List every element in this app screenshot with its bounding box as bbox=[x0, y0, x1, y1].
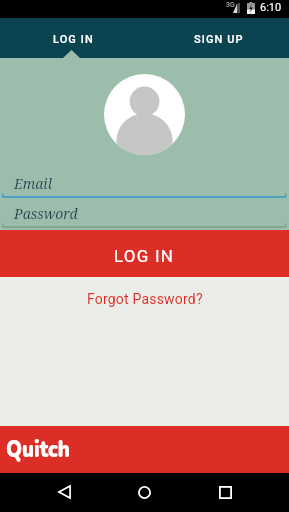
button[interactable]: Back bbox=[40, 473, 88, 511]
staticText: Password bbox=[14, 204, 78, 223]
staticText: Email bbox=[14, 174, 52, 193]
button[interactable]: SIGN UP bbox=[144, 18, 289, 58]
button[interactable]: LOG IN bbox=[0, 18, 144, 58]
button[interactable]: Forgot Password? bbox=[0, 283, 289, 315]
staticText: LOG IN bbox=[114, 246, 175, 266]
button[interactable]: LOG IN bbox=[0, 230, 289, 277]
staticText: SIGN UP bbox=[194, 33, 244, 46]
staticText: Quitch bbox=[6, 433, 70, 466]
staticText: 3G bbox=[226, 1, 235, 9]
button[interactable]: Recent apps bbox=[201, 473, 249, 511]
staticText: 6:10 bbox=[260, 1, 282, 14]
button[interactable]: Home bbox=[120, 473, 168, 511]
staticText: LOG IN bbox=[53, 33, 94, 46]
staticText: Forgot Password? bbox=[87, 291, 203, 307]
